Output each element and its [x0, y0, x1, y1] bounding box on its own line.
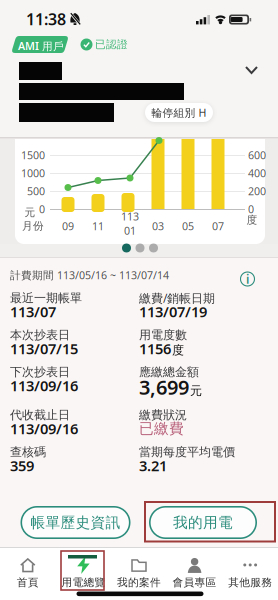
staticText: 元 — [24, 206, 35, 219]
staticText: 113/09/16 — [10, 419, 78, 438]
staticText: 11 — [92, 219, 104, 233]
button[interactable]: i — [239, 271, 255, 287]
staticText: 其他服務 — [228, 576, 272, 589]
staticText: 500 — [27, 184, 45, 198]
staticText: 已繳費 — [139, 419, 184, 437]
staticText: 帳單歷史資訊 — [30, 513, 120, 531]
staticText: 3.21 — [139, 456, 167, 475]
staticText: 03 — [152, 219, 164, 233]
staticText: 1000 — [21, 166, 45, 180]
staticText: 359 — [10, 456, 34, 475]
staticText: 600 — [248, 148, 266, 162]
staticText: 最近一期帳單 — [10, 291, 82, 305]
button[interactable]: 帳單歷史資訊 — [20, 506, 130, 539]
staticText: 首頁 — [17, 576, 39, 589]
button[interactable]: 我的案件 — [112, 555, 166, 591]
staticText: 11:38 — [26, 8, 66, 30]
staticText: 0 — [248, 202, 254, 216]
staticText: 05 — [182, 219, 194, 233]
button[interactable]: 我的用電 — [149, 506, 257, 539]
button[interactable]: 會員專區 — [168, 555, 222, 591]
staticText: 查核碼 — [10, 445, 46, 459]
staticText: 計費期間 113/05/16 ~ 113/07/14 — [10, 268, 169, 282]
staticText: 3,699 — [139, 374, 189, 400]
staticText: 下次抄表日 — [10, 365, 70, 379]
staticText: 我的案件 — [117, 576, 161, 589]
staticText: 113/07/19 — [139, 302, 207, 321]
button[interactable]: 輪停組別 H — [145, 103, 213, 122]
staticText: i — [246, 271, 249, 287]
staticText: 月份 — [22, 219, 44, 232]
staticText: AMI 用戶 — [18, 39, 64, 53]
button[interactable]: 首頁 — [1, 555, 55, 591]
staticText: 已認證 — [95, 38, 128, 51]
staticText: 400 — [248, 166, 266, 180]
staticText: 繳費/銷帳日期 — [139, 290, 215, 306]
staticText: 本次抄表日 — [10, 328, 70, 342]
staticText: 代收截止日 — [10, 408, 70, 422]
staticText: 用電總覽 — [61, 576, 105, 589]
staticText: 113/07/15 — [10, 339, 78, 358]
staticText: 繳費狀況 — [139, 408, 187, 422]
staticText: 用電度數 — [139, 328, 187, 342]
staticText: 113 — [121, 209, 139, 223]
staticText: 元 — [190, 383, 202, 398]
button[interactable] — [241, 62, 261, 78]
staticText: 09 — [62, 219, 74, 233]
staticText: 0 — [39, 202, 45, 216]
staticText: 會員專區 — [173, 576, 217, 589]
staticText: 113/09/16 — [10, 376, 78, 395]
button[interactable]: 用電總覽 — [56, 555, 110, 591]
staticText: 200 — [248, 184, 266, 198]
staticText: 1500 — [21, 148, 45, 162]
button[interactable]: 其他服務 — [223, 555, 277, 591]
staticText: 應繳總金額 — [139, 365, 199, 379]
staticText: 01 — [124, 223, 136, 238]
staticText: 我的用電 — [173, 513, 233, 531]
staticText: 度 — [172, 343, 184, 357]
staticText: 輪停組別 H — [151, 105, 206, 120]
staticText: 當期每度平均電價 — [139, 445, 235, 459]
staticText: 1156 — [139, 339, 171, 358]
staticText: 113/07 — [10, 302, 56, 321]
staticText: 度 — [246, 213, 257, 226]
staticText: 07 — [212, 219, 224, 233]
